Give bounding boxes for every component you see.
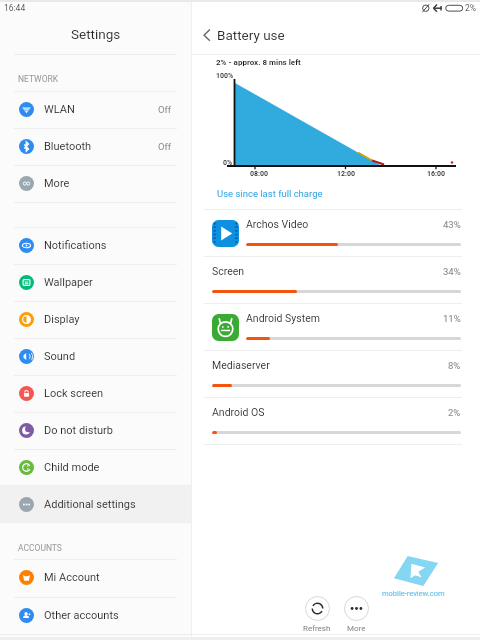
button[interactable]: Display <box>0 301 191 338</box>
staticText: Wallpaper <box>44 276 93 289</box>
button[interactable]: Additional settings <box>0 486 191 523</box>
button[interactable]: WLAN <box>0 91 191 128</box>
staticText: 12:00 <box>337 170 356 178</box>
staticText: More <box>347 624 366 633</box>
button[interactable]: More <box>344 596 369 633</box>
button[interactable]: Wallpaper <box>0 264 191 301</box>
button[interactable]: Bluetooth <box>0 128 191 165</box>
staticText: mobile-review.com <box>382 589 445 598</box>
staticText: Notifications <box>44 239 107 252</box>
staticText: Android OS <box>212 406 265 418</box>
staticText: 100% <box>216 72 234 80</box>
staticText: Additional settings <box>44 498 136 511</box>
button[interactable]: Sound <box>0 338 191 375</box>
staticText: Child mode <box>44 461 100 474</box>
staticText: 34% <box>443 266 461 277</box>
button[interactable]: Android System <box>192 303 480 350</box>
staticText: More <box>44 177 70 190</box>
staticText: Do not disturb <box>44 424 114 437</box>
staticText: Mediaserver <box>212 359 270 371</box>
staticText: 43% <box>443 219 461 230</box>
staticText: Bluetooth <box>44 140 92 153</box>
staticText: NETWORK <box>18 74 59 84</box>
staticText: Lock screen <box>44 387 104 400</box>
button[interactable]: Notifications <box>0 227 191 264</box>
staticText: 2% <box>465 3 477 13</box>
button[interactable]: Back <box>195 22 217 48</box>
staticText: Settings <box>71 26 121 42</box>
staticText: 16:44 <box>4 3 26 13</box>
staticText: 8% <box>448 360 461 371</box>
staticText: 08:00 <box>250 170 269 178</box>
staticText: Sound <box>44 350 76 363</box>
staticText: 16:00 <box>427 170 446 178</box>
button[interactable]: Archos Video <box>192 209 480 256</box>
button[interactable]: Lock screen <box>0 375 191 412</box>
button[interactable]: More <box>0 165 191 202</box>
button[interactable]: Android OS <box>192 397 480 444</box>
button[interactable]: Mi Account <box>0 559 191 596</box>
button[interactable]: Child mode <box>0 449 191 486</box>
button[interactable]: Screen <box>192 256 480 303</box>
staticText: WLAN <box>44 103 75 116</box>
staticText: 2% <box>448 407 461 418</box>
staticText: Screen <box>212 265 245 277</box>
staticText: Off <box>158 104 172 115</box>
staticText: Other accounts <box>44 609 119 622</box>
button[interactable]: Other accounts <box>0 597 191 634</box>
staticText: 0% <box>223 159 233 167</box>
button[interactable]: Do not disturb <box>0 412 191 449</box>
staticText: 11% <box>443 313 461 324</box>
staticText: ACCOUNTS <box>18 543 62 553</box>
button[interactable]: Refresh <box>303 596 331 633</box>
staticText: Android System <box>246 312 320 324</box>
button[interactable]: Mediaserver <box>192 350 480 397</box>
staticText: Use since last full charge <box>217 188 323 199</box>
staticText: Display <box>44 313 80 326</box>
staticText: Refresh <box>303 624 331 633</box>
staticText: Archos Video <box>246 218 309 230</box>
staticText: Battery use <box>217 27 285 43</box>
staticText: Mi Account <box>44 571 100 584</box>
staticText: Off <box>158 141 172 152</box>
staticText: 2% - approx. 8 mins left <box>216 58 301 67</box>
